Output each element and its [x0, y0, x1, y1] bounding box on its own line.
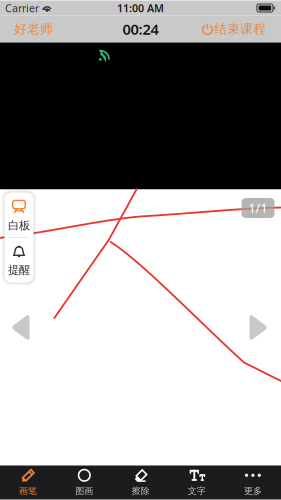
staticText: 11:00 AM: [117, 1, 164, 15]
button[interactable]: 文字: [169, 465, 225, 499]
staticText: 白板: [8, 218, 30, 233]
button[interactable]: 提醒: [4, 238, 33, 282]
button[interactable]: Next page: [248, 312, 270, 342]
button[interactable]: 图画: [56, 465, 112, 499]
staticText: 擦除: [131, 485, 149, 497]
button[interactable]: 更多: [225, 465, 281, 499]
staticText: 画笔: [19, 485, 37, 497]
button[interactable]: 结束课程: [196, 15, 276, 42]
button[interactable]: 画笔: [0, 465, 56, 499]
button[interactable]: Previous page: [9, 312, 31, 342]
button[interactable]: 1/1: [241, 198, 274, 218]
button[interactable]: 好老师: [5, 15, 62, 42]
staticText: 提醒: [8, 263, 30, 277]
staticText: 更多: [244, 485, 262, 497]
staticText: 结束课程: [214, 21, 266, 37]
button[interactable]: 白板: [4, 193, 33, 237]
staticText: 1/1: [248, 200, 267, 216]
staticText: 好老师: [14, 21, 53, 37]
staticText: 文字: [188, 485, 206, 497]
staticText: Carrier: [5, 1, 39, 15]
staticText: 00:24: [122, 19, 158, 39]
staticText: 图画: [75, 485, 93, 497]
button[interactable]: 擦除: [112, 465, 169, 499]
